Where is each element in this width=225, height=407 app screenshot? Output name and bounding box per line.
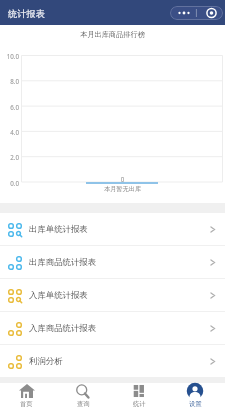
staticText: 首页	[20, 400, 33, 407]
staticText: 统计报表	[8, 8, 45, 20]
staticText: 6.0	[0, 103, 19, 111]
staticText: 本月出库商品排行榜	[0, 30, 225, 39]
button[interactable]: 首页	[0, 383, 55, 407]
staticText: 本月暂无出库	[22, 185, 223, 193]
button[interactable]: 出库单统计报表	[0, 213, 225, 246]
button[interactable]: More options	[170, 6, 223, 20]
staticText: 4.0	[0, 128, 19, 136]
staticText: 入库商品统计报表	[29, 323, 97, 334]
staticText: 入库单统计报表	[29, 290, 88, 301]
staticText: 8.0	[0, 77, 19, 85]
staticText: 出库商品统计报表	[29, 257, 97, 268]
button[interactable]: 设置	[167, 383, 223, 407]
staticText: 统计	[133, 400, 146, 407]
staticText: 设置	[189, 400, 202, 407]
button[interactable]: 统计	[111, 383, 167, 407]
staticText: 10.0	[0, 52, 19, 60]
button[interactable]: 查询	[55, 383, 111, 407]
staticText: 利润分析	[29, 356, 63, 367]
staticText: 0.0	[0, 179, 19, 187]
button[interactable]: 入库商品统计报表	[0, 312, 225, 345]
staticText: 2.0	[0, 153, 19, 161]
staticText: 0	[22, 175, 223, 183]
button[interactable]: 利润分析	[0, 345, 225, 378]
staticText: 出库单统计报表	[29, 224, 88, 235]
button[interactable]: 出库商品统计报表	[0, 246, 225, 279]
button[interactable]: 入库单统计报表	[0, 279, 225, 312]
staticText: 查询	[77, 400, 90, 407]
